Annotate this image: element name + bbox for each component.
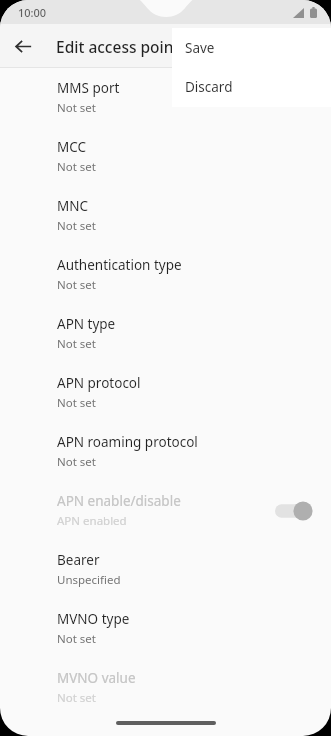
staticText: 10:00 — [18, 5, 47, 20]
staticText: MVNO type — [57, 610, 130, 628]
button[interactable]: Discard — [172, 67, 331, 106]
staticText: APN protocol — [57, 374, 141, 392]
button[interactable]: Back — [8, 31, 38, 61]
button[interactable]: MVNO value — [0, 658, 331, 717]
button[interactable]: MCC — [0, 127, 331, 186]
staticText: Not set — [57, 159, 96, 175]
staticText: Not set — [57, 277, 96, 293]
button[interactable]: APN enable/disable toggle — [275, 499, 315, 523]
button[interactable]: Bearer — [0, 540, 331, 599]
button[interactable]: APN enable/disable — [0, 481, 331, 540]
staticText: MCC — [57, 138, 87, 156]
button[interactable]: APN roaming protocol — [0, 422, 331, 481]
staticText: Bearer — [57, 551, 100, 569]
staticText: Not set — [57, 454, 96, 470]
button[interactable]: APN protocol — [0, 363, 331, 422]
staticText: Authentication type — [57, 256, 182, 274]
button[interactable]: MVNO type — [0, 599, 331, 658]
button[interactable]: MNC — [0, 186, 331, 245]
staticText: Not set — [57, 336, 96, 352]
staticText: Not set — [57, 395, 96, 411]
staticText: MMS port — [57, 79, 120, 97]
button[interactable]: Authentication type — [0, 245, 331, 304]
staticText: Not set — [57, 690, 96, 706]
staticText: Save — [185, 39, 215, 57]
staticText: MVNO value — [57, 669, 136, 687]
staticText: Not set — [57, 100, 96, 116]
staticText: Unspecified — [57, 572, 121, 588]
staticText: MNC — [57, 197, 89, 215]
staticText: Discard — [185, 78, 233, 96]
staticText: APN type — [57, 315, 116, 333]
button[interactable]: APN type — [0, 304, 331, 363]
staticText: Edit access point — [56, 36, 180, 57]
staticText: Not set — [57, 218, 96, 234]
staticText: Not set — [57, 631, 96, 647]
staticText: APN enabled — [57, 513, 127, 529]
button[interactable]: Save — [172, 28, 331, 67]
staticText: APN roaming protocol — [57, 433, 198, 451]
staticText: APN enable/disable — [57, 492, 181, 510]
button[interactable]: MMS port — [0, 68, 331, 127]
